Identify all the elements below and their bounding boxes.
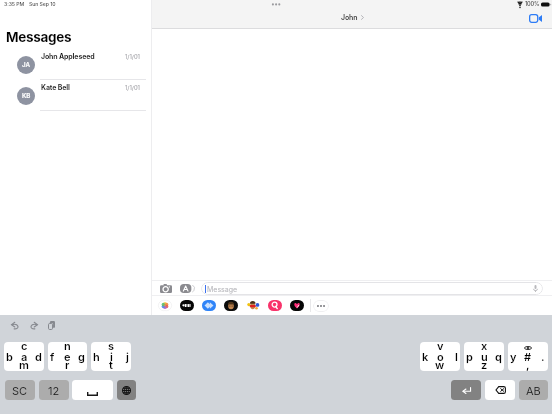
button[interactable]: v: [420, 342, 460, 371]
button[interactable]: John: [341, 13, 364, 21]
staticText: SC: [12, 384, 28, 397]
staticText: t: [109, 358, 113, 371]
button[interactable]: SC: [5, 380, 35, 400]
staticText: John: [341, 13, 358, 21]
button[interactable]: Paste: [45, 319, 58, 332]
button[interactable]: Message: [201, 282, 543, 295]
staticText: x: [481, 342, 488, 352]
button[interactable]: x: [464, 342, 504, 371]
staticText: n: [64, 342, 71, 352]
button[interactable]: s: [91, 342, 131, 371]
staticText: 12: [48, 384, 60, 397]
staticText: c: [21, 342, 28, 352]
staticText: j: [126, 350, 129, 363]
button[interactable]: 12: [39, 380, 69, 400]
button[interactable]: Send: [198, 297, 220, 314]
button[interactable]: c: [4, 342, 44, 371]
button[interactable]: Redo: [27, 319, 40, 332]
staticText: o: [437, 350, 444, 363]
button[interactable]: Memoji: [220, 297, 242, 314]
staticText: b: [6, 350, 13, 363]
button[interactable]: Return: [451, 380, 481, 400]
button[interactable]: Change keyboard: [117, 380, 136, 400]
staticText: .: [541, 350, 545, 363]
button[interactable]: y: [508, 342, 548, 371]
staticText: f: [50, 350, 55, 363]
staticText: 100%: [525, 1, 540, 8]
staticText: w: [435, 358, 445, 371]
staticText: KB: [22, 92, 31, 100]
button[interactable]: Delete: [485, 380, 515, 400]
staticText: Kate Bell: [41, 83, 70, 91]
staticText: z: [481, 358, 488, 371]
button[interactable]: Apple Cash: [176, 297, 198, 314]
staticText: v: [437, 342, 444, 352]
button[interactable]: More apps: [313, 300, 329, 312]
staticText: k: [422, 350, 429, 363]
button[interactable]: Space: [72, 380, 113, 400]
button[interactable]: KB: [0, 80, 151, 111]
staticText: i: [110, 350, 113, 363]
staticText: 1/1/01: [125, 53, 140, 60]
button[interactable]: n: [48, 342, 87, 371]
staticText: Messages: [6, 29, 72, 45]
staticText: q: [495, 350, 502, 363]
staticText: 3:35 PM: [4, 1, 25, 7]
staticText: l: [455, 350, 458, 363]
staticText: 1/1/01: [125, 84, 140, 91]
button[interactable]: Digital Touch: [286, 297, 308, 314]
staticText: #: [524, 350, 532, 363]
staticText: u: [481, 350, 488, 363]
button[interactable]: Apps: [180, 282, 194, 294]
staticText: d: [35, 350, 42, 363]
button[interactable]: Images search: [264, 297, 286, 314]
button[interactable]: Photos: [154, 297, 176, 314]
button[interactable]: Memoji stickers: [242, 297, 264, 314]
button[interactable]: FaceTime video call: [528, 13, 543, 24]
staticText: a: [21, 350, 28, 363]
staticText: h: [93, 350, 100, 363]
staticText: s: [108, 342, 115, 352]
staticText: e: [64, 350, 71, 363]
staticText: r: [65, 358, 70, 371]
staticText: m: [19, 358, 29, 371]
staticText: Message: [207, 285, 238, 293]
staticText: AB: [526, 384, 541, 397]
button[interactable]: JA: [0, 49, 151, 80]
staticText: ,: [526, 358, 530, 371]
staticText: JA: [22, 61, 30, 69]
button[interactable]: AB: [519, 380, 548, 400]
button[interactable]: Undo: [9, 319, 22, 332]
staticText: Sun Sep 10: [29, 1, 56, 7]
staticText: y: [510, 350, 517, 363]
button[interactable]: Camera: [159, 282, 173, 294]
staticText: p: [466, 350, 473, 363]
staticText: g: [78, 350, 85, 363]
staticText: John Appleseed: [41, 52, 95, 60]
